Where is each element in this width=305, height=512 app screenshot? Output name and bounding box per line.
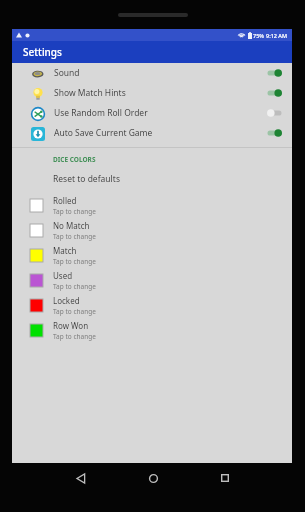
staticText: Sound [54, 67, 80, 79]
staticText: Rolled [53, 195, 77, 206]
button[interactable]: Match [12, 243, 292, 268]
button[interactable]: Auto Save Current Game [12, 123, 292, 143]
button[interactable]: Use Random Roll Order [12, 103, 292, 123]
staticText: Tap to change [53, 307, 96, 316]
staticText: Show Match Hints [54, 87, 126, 99]
staticText: Tap to change [53, 332, 96, 341]
button[interactable]: Used [12, 268, 292, 293]
staticText: Reset to defaults [53, 173, 120, 185]
staticText: Tap to change [53, 232, 96, 241]
staticText: Tap to change [53, 282, 96, 291]
staticText: Tap to change [53, 257, 96, 266]
button[interactable]: Home [117, 463, 189, 493]
button[interactable]: Rolled [12, 193, 292, 218]
button[interactable]: Reset to defaults [12, 171, 292, 187]
button[interactable]: Show Match Hints [12, 83, 292, 103]
staticText: 75% [253, 32, 264, 39]
staticText: Row Won [53, 320, 89, 331]
staticText: DICE COLORS [53, 155, 96, 164]
button[interactable]: Locked [12, 293, 292, 318]
staticText: No Match [53, 220, 90, 231]
staticText: 9:12 AM [266, 32, 288, 39]
staticText: Auto Save Current Game [54, 127, 153, 139]
staticText: Match [53, 245, 77, 256]
staticText: Tap to change [53, 207, 96, 216]
staticText: Used [53, 270, 73, 281]
button[interactable]: No Match [12, 218, 292, 243]
button[interactable]: Back [45, 463, 117, 493]
button[interactable]: Sound [12, 63, 292, 83]
button[interactable]: Row Won [12, 318, 292, 343]
button[interactable]: Recent apps [189, 463, 261, 493]
staticText: Use Random Roll Order [54, 107, 148, 119]
staticText: Locked [53, 295, 80, 306]
staticText: Settings [23, 45, 62, 59]
